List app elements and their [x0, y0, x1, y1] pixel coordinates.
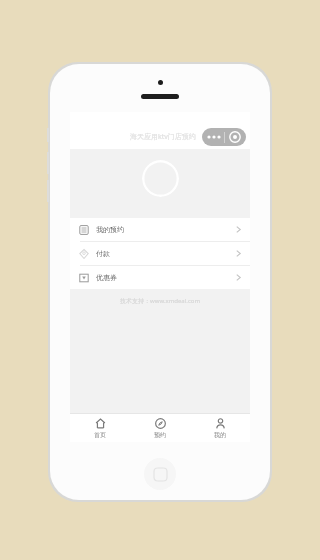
button[interactable]: 我的预约	[70, 218, 250, 241]
button[interactable]: 预约	[130, 414, 190, 442]
staticText: 我的	[214, 431, 226, 439]
button[interactable]: More	[202, 128, 246, 146]
button[interactable]: 我的	[190, 414, 250, 442]
other: Close	[225, 128, 245, 146]
staticText: 技术支持：www.xmdeal.com	[70, 297, 250, 305]
staticText: 优惠券	[96, 273, 117, 282]
staticText: 预约	[154, 431, 166, 439]
staticText: 我的预约	[96, 225, 124, 234]
button[interactable]: 首页	[70, 414, 130, 442]
button[interactable]: Avatar	[142, 160, 179, 197]
button[interactable]: 优惠券	[70, 266, 250, 289]
staticText: 首页	[94, 431, 106, 439]
staticText: 付款	[96, 249, 110, 258]
other: More	[204, 128, 224, 146]
staticText: 海天应用ktv门店预约	[130, 132, 196, 142]
button[interactable]: 付款	[70, 242, 250, 265]
